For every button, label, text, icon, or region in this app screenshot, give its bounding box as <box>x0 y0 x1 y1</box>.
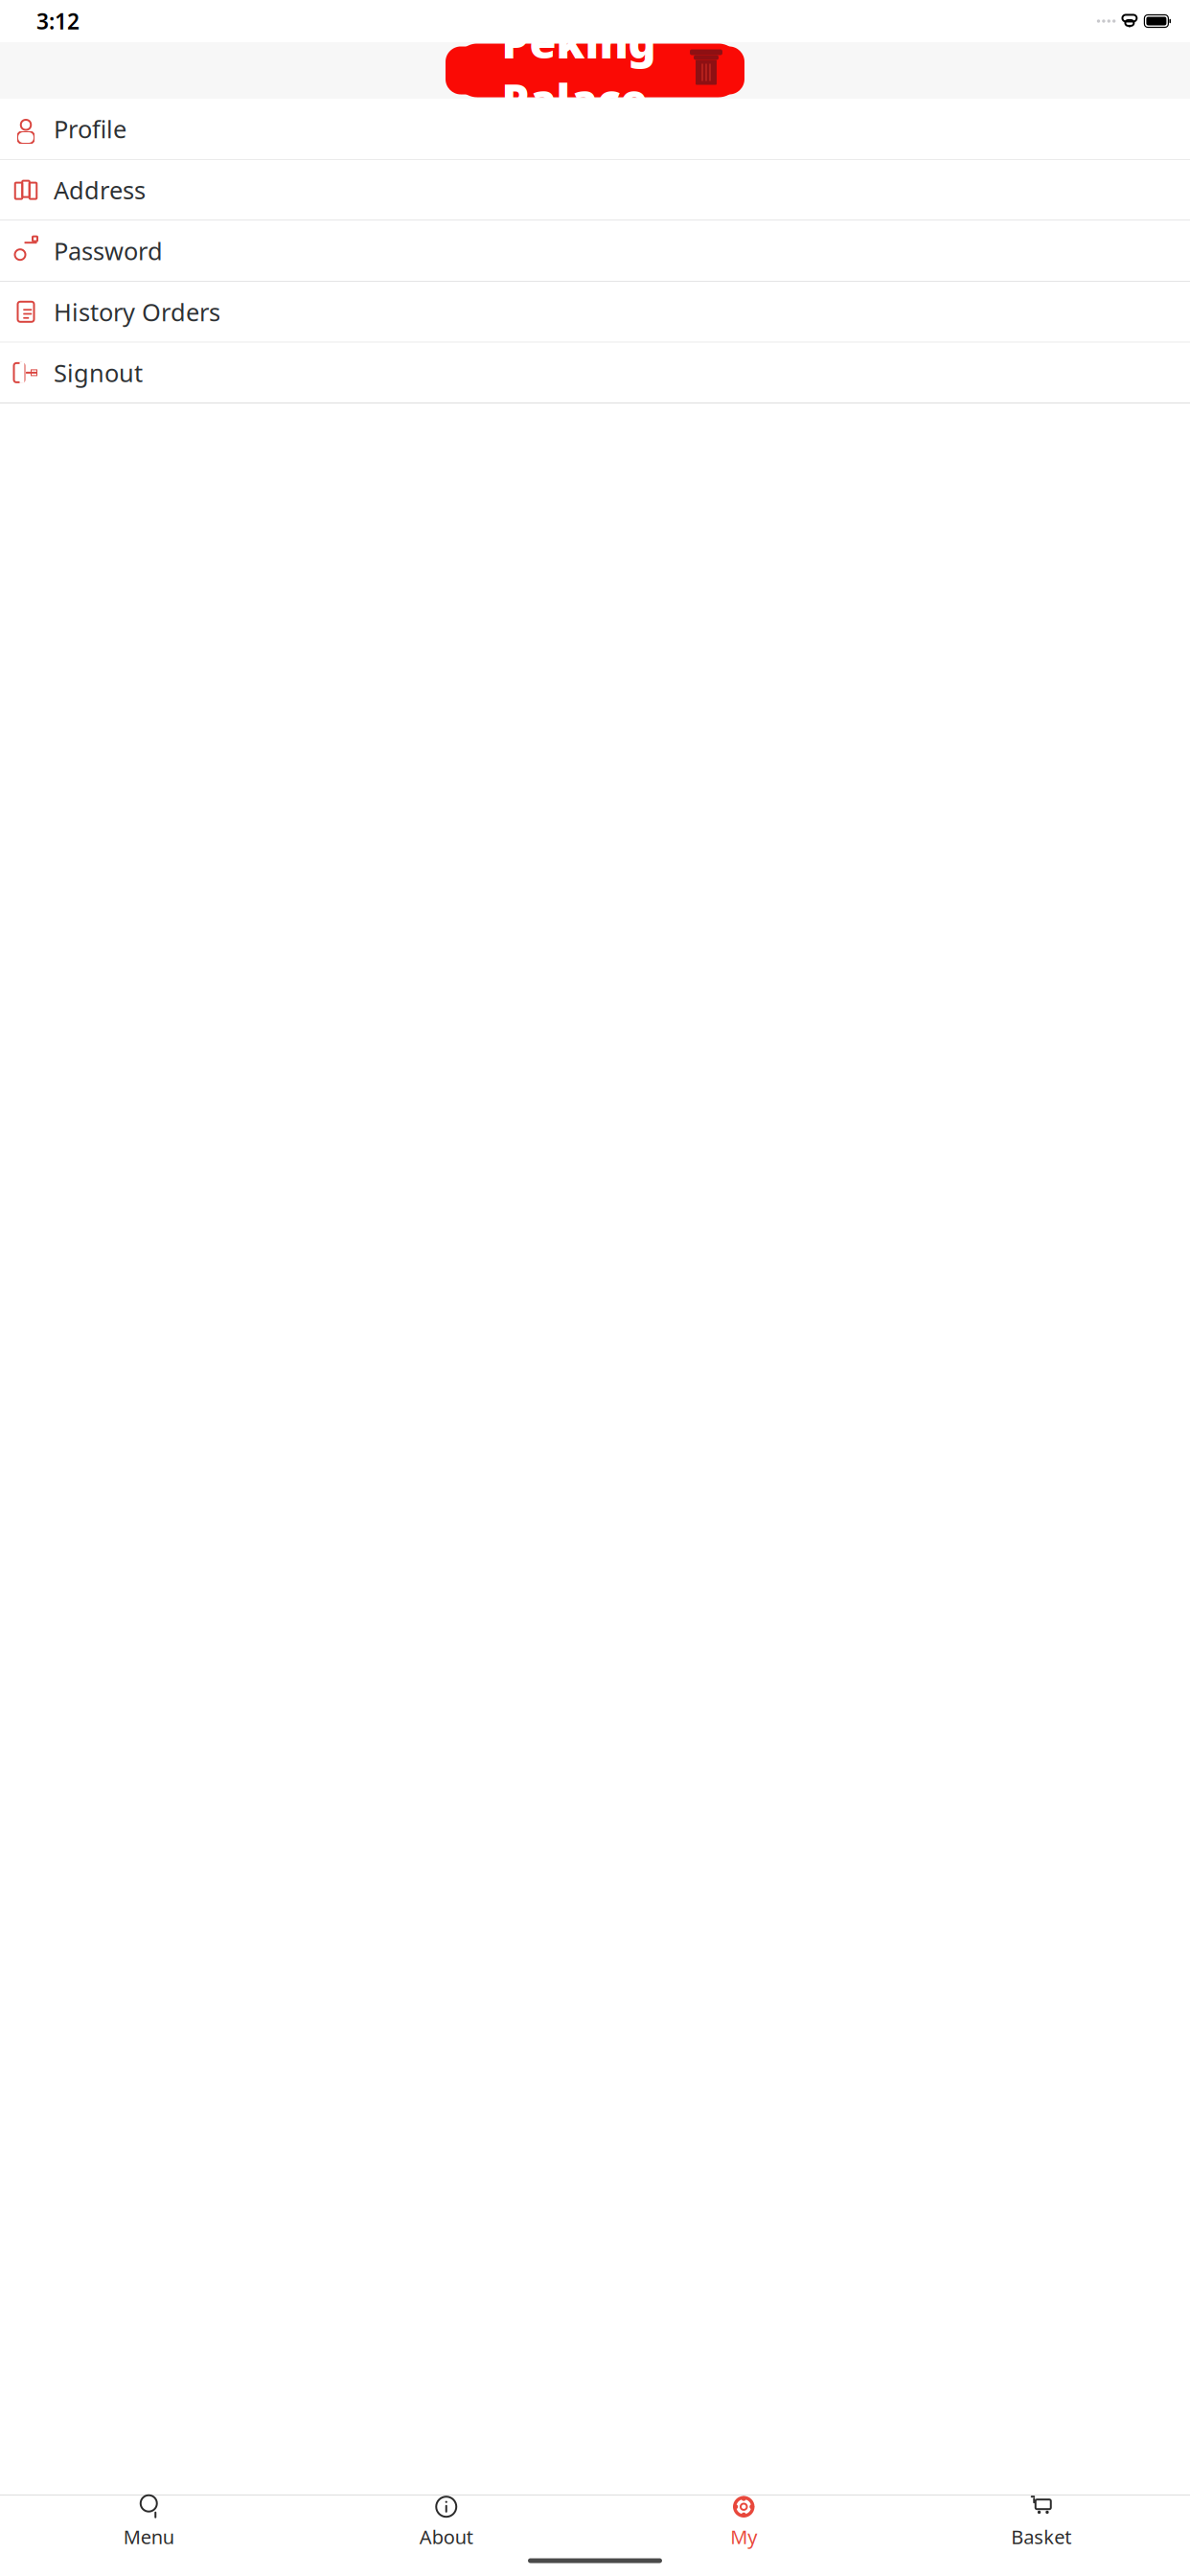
button[interactable]: History Orders <box>0 282 1190 343</box>
button[interactable]: Password <box>0 221 1190 282</box>
staticText: Menu <box>123 2524 174 2549</box>
button[interactable]: Address <box>0 160 1190 221</box>
staticText: Signout <box>54 357 143 389</box>
staticText: 3:12 <box>36 7 80 35</box>
staticText: Address <box>54 174 146 206</box>
button[interactable]: About <box>297 2488 595 2553</box>
staticText: Password <box>54 235 163 267</box>
staticText: History Orders <box>54 296 220 328</box>
button[interactable]: Menu <box>0 2488 297 2553</box>
button[interactable]: Signout <box>0 343 1190 403</box>
button[interactable]: Profile <box>0 99 1190 160</box>
staticText: Peking Palace <box>502 13 656 128</box>
staticText: My <box>730 2524 757 2549</box>
staticText: About <box>419 2524 473 2549</box>
button[interactable]: Basket <box>892 2488 1190 2553</box>
button[interactable]: My <box>595 2488 892 2553</box>
staticText: Basket <box>1011 2524 1071 2549</box>
staticText: Profile <box>54 113 126 145</box>
